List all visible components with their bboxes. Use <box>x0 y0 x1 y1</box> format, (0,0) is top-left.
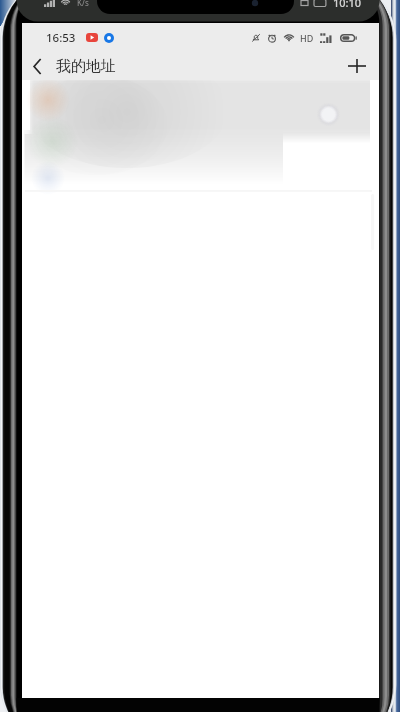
staticText: HD <box>300 32 314 44</box>
staticText: 16:53 <box>46 30 76 46</box>
button[interactable]: Select address <box>317 103 340 126</box>
button[interactable]: Select address <box>22 80 379 698</box>
button[interactable]: Back <box>22 52 52 80</box>
staticText: 我的地址 <box>56 57 116 76</box>
button[interactable]: Add address <box>341 52 373 80</box>
staticText: K/s <box>77 0 89 8</box>
staticText: 10:10 <box>333 0 362 10</box>
